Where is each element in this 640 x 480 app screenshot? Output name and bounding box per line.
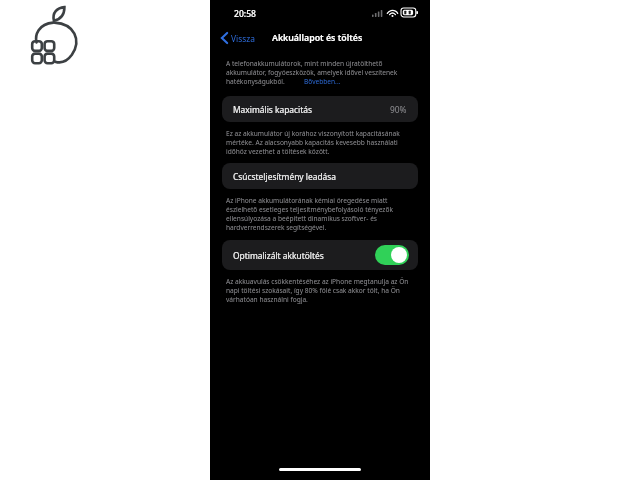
button[interactable]: Vissza bbox=[218, 29, 258, 47]
staticText: A telefonakkumulátorok, mint minden újra… bbox=[226, 59, 414, 86]
staticText: Az akkuavulás csökkentéséhez az iPhone m… bbox=[226, 277, 414, 304]
staticText: 90% bbox=[390, 104, 407, 115]
button[interactable]: Optimalizált akkutöltés bbox=[222, 240, 418, 270]
button[interactable]: Csúcsteljesítmény leadása bbox=[222, 163, 418, 189]
button[interactable]: Optimalizált akkutöltés bekapcsolva bbox=[375, 245, 409, 265]
staticText: Maximális kapacitás bbox=[233, 104, 313, 115]
staticText: Ez az akkumulátor új korához viszonyítot… bbox=[226, 129, 414, 156]
staticText: Optimalizált akkutöltés bbox=[233, 250, 324, 261]
staticText: Bővebben... bbox=[304, 77, 341, 86]
button[interactable]: Maximális kapacitás bbox=[222, 96, 418, 122]
button[interactable]: Bővebben... bbox=[304, 77, 341, 86]
staticText: Az iPhone akkumulátorának kémiai öregedé… bbox=[226, 196, 414, 232]
staticText: Csúcsteljesítmény leadása bbox=[233, 171, 337, 182]
staticText: Vissza bbox=[231, 33, 255, 44]
staticText: Akkuállapot és töltés bbox=[272, 32, 363, 44]
staticText: 20:58 bbox=[234, 8, 257, 20]
